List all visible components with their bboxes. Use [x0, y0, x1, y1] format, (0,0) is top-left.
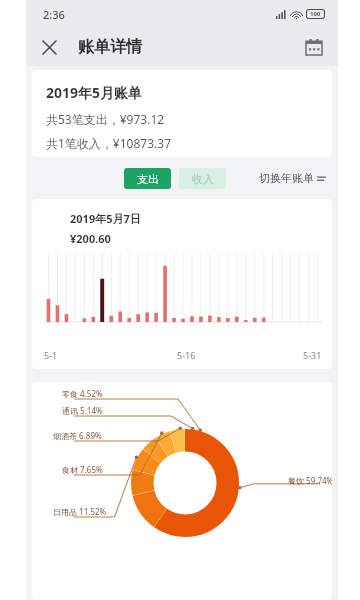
- staticText: ¥200.60: [70, 231, 111, 246]
- staticText: 日用品 11.52%: [53, 506, 107, 517]
- staticText: 餐饮 59.74%: [288, 475, 332, 486]
- staticText: 切换年账单: [259, 171, 314, 185]
- staticText: 食材 7.65%: [62, 464, 103, 475]
- staticText: 收入: [192, 172, 214, 186]
- staticText: 2019年5月7日: [70, 211, 141, 226]
- staticText: 2:36: [43, 7, 65, 22]
- button[interactable]: Close: [34, 32, 64, 62]
- staticText: 共1笔收入，¥10873.37: [46, 135, 171, 151]
- staticText: 通讯 5.14%: [62, 405, 103, 416]
- staticText: 5-1: [44, 349, 58, 361]
- staticText: 共53笔支出，¥973.12: [46, 111, 165, 127]
- button[interactable]: Calendar: [300, 33, 328, 61]
- button[interactable]: 收入: [179, 168, 226, 189]
- staticText: 烟酒茶 6.89%: [53, 430, 102, 441]
- staticText: 100: [310, 10, 321, 18]
- staticText: 2019年5月账单: [46, 83, 143, 102]
- staticText: 5-31: [303, 349, 322, 361]
- button[interactable]: 切换年账单: [259, 171, 332, 185]
- staticText: 零食 4.52%: [62, 388, 103, 399]
- button[interactable]: 零食 4.52%: [32, 382, 332, 600]
- button[interactable]: 支出: [124, 168, 171, 189]
- staticText: 5-16: [177, 349, 196, 361]
- staticText: 支出: [137, 172, 159, 186]
- staticText: 账单详情: [78, 37, 142, 57]
